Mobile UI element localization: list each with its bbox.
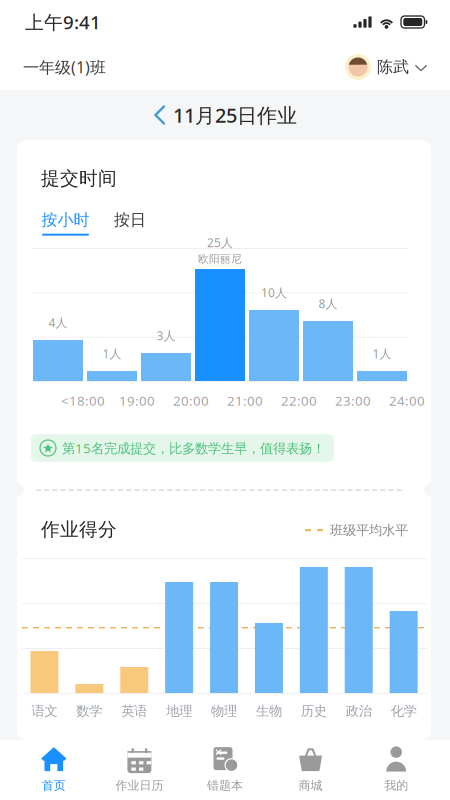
staticText: 1人 bbox=[372, 345, 391, 361]
staticText: 8人 bbox=[318, 295, 337, 311]
staticText: 23:00 bbox=[335, 392, 371, 409]
staticText: 按日 bbox=[114, 210, 146, 230]
staticText: 20:00 bbox=[173, 392, 209, 409]
staticText: 1人 bbox=[102, 345, 121, 361]
staticText: 生物 bbox=[256, 703, 282, 719]
staticText: 11月25日作业 bbox=[173, 102, 297, 128]
staticText: 我的 bbox=[384, 778, 408, 793]
staticText: 化学 bbox=[391, 703, 417, 719]
staticText: 陈武 bbox=[377, 57, 409, 77]
staticText: 第15名完成提交，比多数学生早，值得表扬！ bbox=[62, 439, 325, 457]
staticText: 25人 bbox=[207, 234, 233, 250]
staticText: 数学 bbox=[76, 703, 102, 719]
staticText: 4人 bbox=[48, 314, 67, 330]
staticText: 3人 bbox=[156, 327, 175, 343]
staticText: 历史 bbox=[301, 703, 327, 719]
staticText: 商城 bbox=[299, 778, 323, 793]
staticText: 22:00 bbox=[281, 392, 317, 409]
button[interactable]: 陈武 bbox=[345, 54, 427, 80]
staticText: <18:00 bbox=[61, 392, 105, 409]
staticText: 按小时 bbox=[41, 210, 89, 230]
staticText: 作业日历 bbox=[115, 778, 163, 793]
staticText: 提交时间 bbox=[41, 167, 117, 190]
staticText: 欧阳丽尼 bbox=[198, 252, 242, 265]
staticText: 作业得分 bbox=[41, 518, 117, 541]
button[interactable]: 作业日历 bbox=[97, 740, 182, 800]
staticText: 首页 bbox=[42, 778, 66, 793]
staticText: 24:00 bbox=[389, 392, 425, 409]
button[interactable]: 首页 bbox=[11, 740, 97, 800]
staticText: 一年级(1)班 bbox=[23, 56, 106, 78]
staticText: 19:00 bbox=[119, 392, 155, 409]
staticText: 班级平均水平 bbox=[330, 522, 408, 538]
staticText: 上午9:41 bbox=[25, 10, 101, 34]
button[interactable]: 商城 bbox=[268, 740, 353, 800]
button[interactable]: 错题本 bbox=[182, 740, 268, 800]
button[interactable]: 我的 bbox=[353, 740, 439, 800]
staticText: 10人 bbox=[261, 284, 287, 300]
staticText: 政治 bbox=[346, 703, 372, 719]
staticText: 21:00 bbox=[227, 392, 263, 409]
staticText: 错题本 bbox=[207, 778, 243, 793]
button[interactable]: 按日 bbox=[114, 210, 146, 236]
staticText: 地理 bbox=[166, 703, 192, 719]
staticText: 语文 bbox=[31, 703, 57, 719]
button[interactable]: 按小时 bbox=[41, 210, 90, 236]
staticText: 物理 bbox=[211, 703, 237, 719]
staticText: 英语 bbox=[121, 703, 147, 719]
button[interactable]: Back bbox=[153, 105, 166, 125]
